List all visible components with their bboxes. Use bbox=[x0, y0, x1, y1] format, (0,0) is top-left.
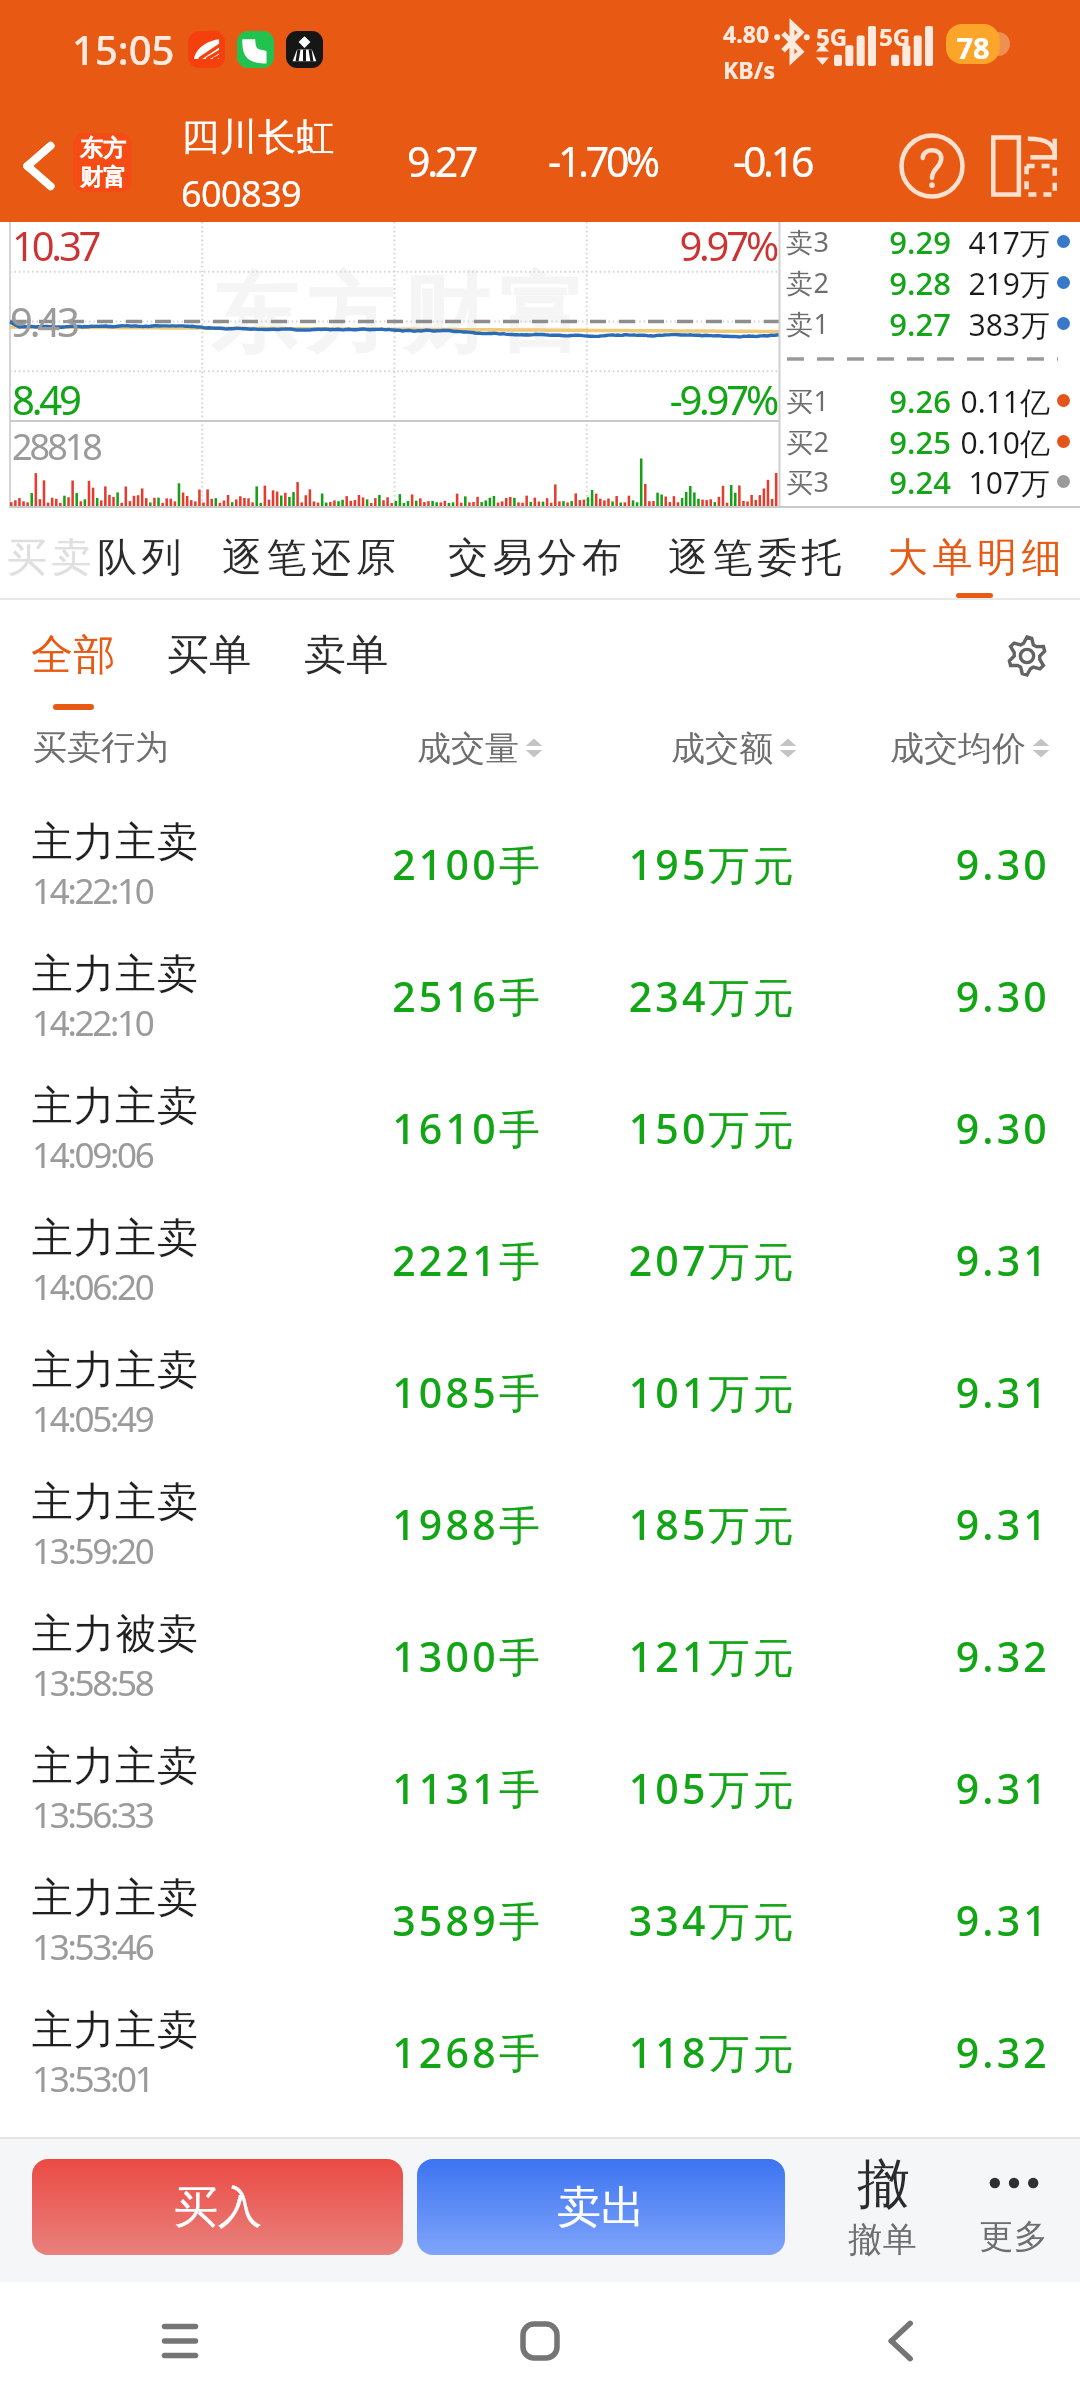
staticText: 东方 bbox=[80, 134, 126, 163]
button[interactable]: 成交额 bbox=[544, 724, 797, 772]
staticText: 卖出 bbox=[557, 2180, 645, 2235]
button[interactable]: 成交量 bbox=[290, 724, 543, 772]
button[interactable]: 主力主卖 bbox=[0, 1310, 1080, 1442]
staticText: 撤 bbox=[857, 2151, 910, 2218]
button[interactable]: 主力主卖 bbox=[0, 1178, 1080, 1310]
staticText: 14:05:49 bbox=[32, 1395, 153, 1443]
button[interactable]: 主力主卖 bbox=[0, 1706, 1080, 1838]
staticText: 买单 bbox=[167, 629, 252, 682]
staticText: 主力主卖 bbox=[32, 2005, 199, 2057]
staticText: -0.16 bbox=[733, 133, 812, 189]
button[interactable]: 买卖 bbox=[0, 508, 203, 600]
staticText: 9.97% bbox=[580, 218, 776, 272]
staticText: 9.30 bbox=[797, 1100, 1050, 1156]
staticText: 交易分布 bbox=[448, 532, 627, 582]
button[interactable]: 主力主卖 bbox=[0, 914, 1080, 1046]
button[interactable]: 更多 bbox=[954, 2151, 1074, 2258]
button[interactable]: 卖单 bbox=[288, 629, 405, 682]
staticText: 118万元 bbox=[544, 2024, 797, 2080]
staticText: 417万 bbox=[951, 222, 1050, 263]
staticText: 9.29 bbox=[837, 221, 951, 262]
staticText: 219万 bbox=[951, 263, 1050, 304]
staticText: 主力主卖 bbox=[32, 1477, 199, 1529]
button[interactable]: 买单 bbox=[151, 629, 268, 682]
staticText: 主力主卖 bbox=[32, 817, 199, 869]
staticText: 卖2 bbox=[786, 264, 830, 301]
button[interactable]: 撤 bbox=[823, 2151, 943, 2261]
staticText: 207万元 bbox=[544, 1232, 797, 1288]
staticText: 8.49 bbox=[12, 372, 79, 426]
staticText: 四川长虹 bbox=[181, 113, 335, 161]
staticText: 2221手 bbox=[290, 1232, 543, 1288]
staticText: 121万元 bbox=[544, 1628, 797, 1684]
staticText: 成交量 bbox=[417, 727, 519, 770]
button[interactable]: 大单明细 bbox=[871, 508, 1080, 600]
staticText: 9.31 bbox=[797, 1496, 1050, 1552]
staticText: 14:22:10 bbox=[32, 867, 153, 915]
staticText: 9.32 bbox=[797, 1628, 1050, 1684]
staticText: 9.32 bbox=[797, 2024, 1050, 2080]
button[interactable]: Settings bbox=[985, 614, 1069, 698]
staticText: 9.25 bbox=[837, 421, 951, 462]
button[interactable]: 逐笔还原 bbox=[205, 508, 417, 600]
button[interactable]: 买入 bbox=[32, 2159, 403, 2255]
button[interactable]: 卖3 bbox=[779, 220, 1080, 261]
staticText: 买入 bbox=[174, 2180, 262, 2235]
staticText: 15:05 bbox=[72, 22, 175, 76]
button[interactable]: 卖2 bbox=[779, 261, 1080, 302]
staticText: 主力主卖 bbox=[32, 949, 199, 1001]
staticText: 9.43 bbox=[10, 294, 77, 348]
button[interactable]: 主力主卖 bbox=[0, 1838, 1080, 1970]
staticText: 更多 bbox=[979, 2215, 1049, 2258]
staticText: 东方财富 bbox=[206, 261, 590, 369]
staticText: 主力被卖 bbox=[32, 1609, 199, 1661]
staticText: 150万元 bbox=[544, 1100, 797, 1156]
button[interactable]: 交易分布 bbox=[431, 508, 643, 600]
staticText: 1300手 bbox=[290, 1628, 543, 1684]
staticText: 主力主卖 bbox=[32, 1345, 199, 1397]
button[interactable]: 买1 bbox=[779, 379, 1080, 420]
button[interactable]: Help bbox=[880, 110, 984, 222]
staticText: 383万 bbox=[951, 304, 1050, 345]
staticText: 4.80 bbox=[723, 18, 770, 49]
button[interactable]: 卖出 bbox=[417, 2159, 785, 2255]
button[interactable]: 买2 bbox=[779, 420, 1080, 461]
button[interactable]: Recent apps bbox=[0, 2282, 360, 2400]
staticText: 2100手 bbox=[290, 836, 543, 892]
button[interactable]: 逐笔委托 bbox=[651, 508, 863, 600]
staticText: 9.31 bbox=[797, 1364, 1050, 1420]
staticText: 1131手 bbox=[290, 1760, 543, 1816]
staticText: 买卖行为 bbox=[33, 726, 169, 769]
button[interactable]: 买3 bbox=[779, 460, 1080, 501]
button[interactable]: 主力主卖 bbox=[0, 782, 1080, 914]
staticText: 195万元 bbox=[544, 836, 797, 892]
staticText: 撤单 bbox=[848, 2218, 918, 2261]
staticText: 5G bbox=[816, 20, 848, 53]
button[interactable]: 主力主卖 bbox=[0, 1442, 1080, 1574]
button[interactable]: Back bbox=[720, 2282, 1080, 2400]
staticText: 9.26 bbox=[837, 380, 951, 421]
staticText: 主力主卖 bbox=[32, 1081, 199, 1133]
staticText: 28818 bbox=[12, 422, 100, 471]
staticText: 9.24 bbox=[837, 461, 951, 502]
button[interactable]: 成交均价 bbox=[797, 724, 1050, 772]
button[interactable]: 主力被卖 bbox=[0, 1574, 1080, 1706]
button[interactable]: Landscape mode bbox=[974, 110, 1074, 222]
staticText: 234万元 bbox=[544, 968, 797, 1024]
button[interactable]: 主力主卖 bbox=[0, 1046, 1080, 1178]
staticText: 主力主卖 bbox=[32, 1213, 199, 1265]
staticText: 9.27 bbox=[407, 133, 476, 189]
staticText: 买卖 bbox=[7, 532, 97, 582]
staticText: 1268手 bbox=[290, 2024, 543, 2080]
button[interactable]: Back bbox=[0, 110, 76, 222]
button[interactable]: 主力主卖 bbox=[0, 1970, 1080, 2102]
staticText: 1085手 bbox=[290, 1364, 543, 1420]
staticText: 卖单 bbox=[304, 629, 389, 682]
button[interactable]: Home bbox=[360, 2282, 720, 2400]
staticText: 13:56:33 bbox=[32, 1791, 153, 1839]
staticText: 9.31 bbox=[797, 1892, 1050, 1948]
staticText: 全部 bbox=[31, 629, 116, 682]
staticText: 0.10亿 bbox=[951, 422, 1050, 463]
button[interactable]: 卖1 bbox=[779, 302, 1080, 343]
button[interactable]: 全部 bbox=[15, 629, 132, 710]
